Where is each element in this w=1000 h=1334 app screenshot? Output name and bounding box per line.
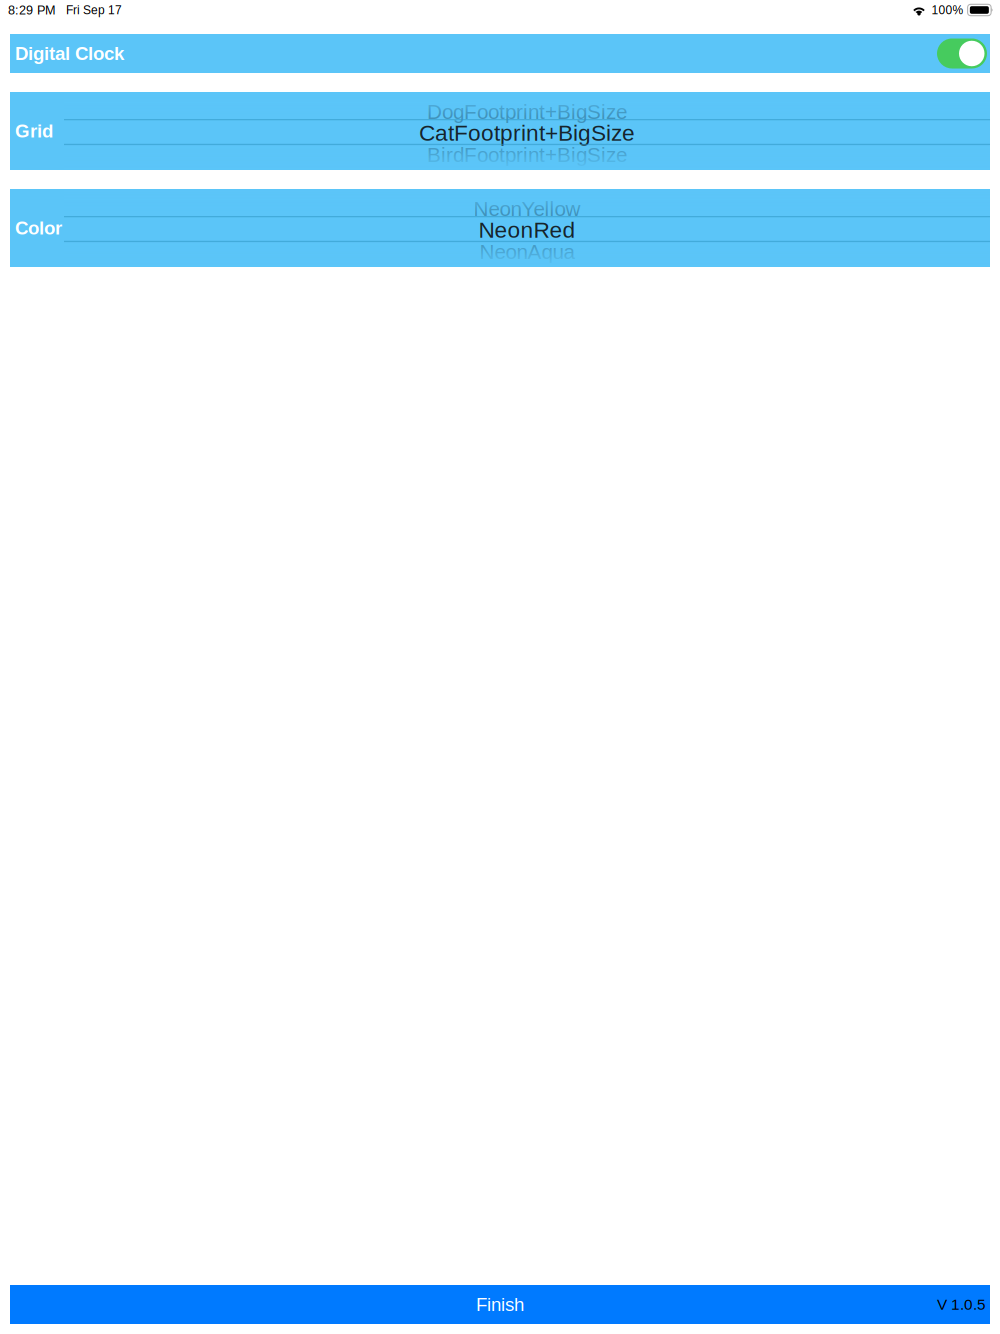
button[interactable]: Digital Clock (10, 34, 990, 73)
staticText: BirdFootprint+BigSize (427, 143, 627, 166)
staticText: 8:29 PM (8, 3, 56, 17)
staticText: Digital Clock (15, 43, 124, 64)
staticText: NeonRed (478, 217, 575, 243)
staticText: 100% (932, 3, 964, 17)
staticText: Fri Sep 17 (66, 3, 122, 17)
staticText: NeonAqua (479, 240, 574, 263)
staticText: Finish (476, 1294, 524, 1315)
button[interactable]: Finish (10, 1285, 990, 1324)
button[interactable]: DogFootprint+BigSize (10, 92, 990, 170)
button[interactable]: NeonYellow (10, 189, 990, 267)
staticText: NeonYellow (473, 197, 580, 220)
button[interactable]: Digital Clock toggle (937, 38, 987, 68)
staticText: CatFootprint+BigSize (419, 120, 635, 146)
staticText: Color (15, 218, 62, 238)
staticText: DogFootprint+BigSize (427, 100, 627, 123)
staticText: Grid (15, 121, 53, 141)
staticText: V 1.0.5 (937, 1296, 986, 1313)
